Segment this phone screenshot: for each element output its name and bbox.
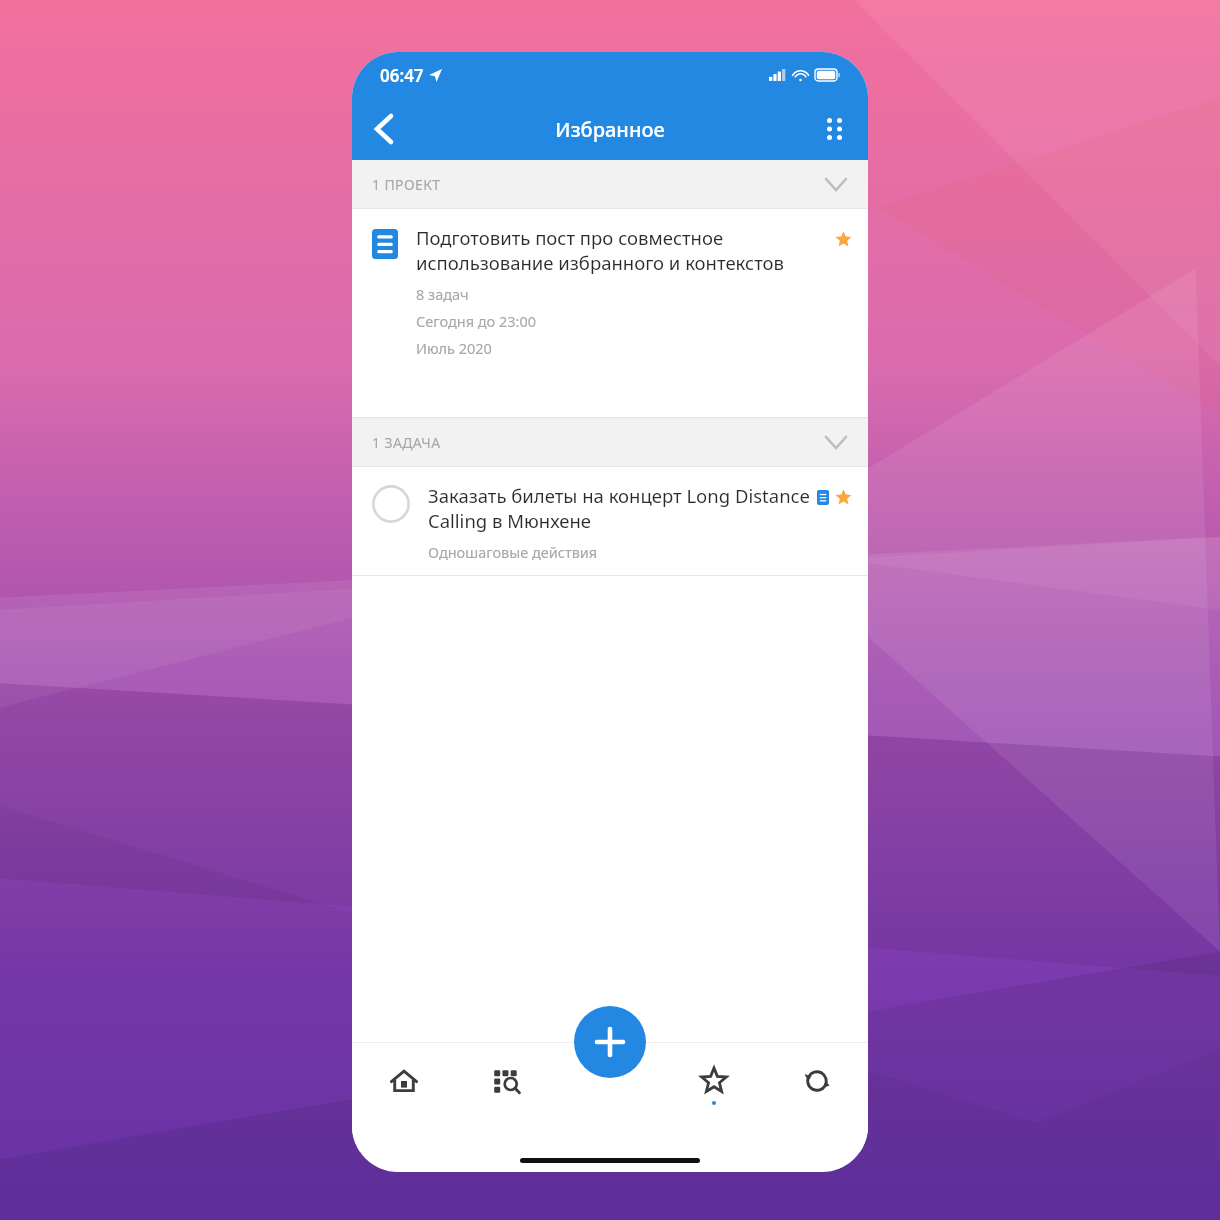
staticText: 8 задач bbox=[416, 284, 469, 304]
staticText: Заказать билеты на концерт Long Distance… bbox=[428, 483, 811, 534]
button[interactable]: Home bbox=[352, 1042, 456, 1128]
staticText: Одношаговые действия bbox=[428, 542, 598, 562]
staticText: 1 ЗАДАЧА bbox=[372, 433, 441, 452]
button[interactable]: Favorites bbox=[662, 1042, 765, 1128]
button[interactable]: Подготовить пост про совместное использо… bbox=[352, 209, 868, 417]
staticText: Избранное bbox=[555, 116, 665, 143]
button[interactable]: 1 ЗАДАЧА bbox=[352, 418, 868, 466]
staticText: Сегодня до 23:00 bbox=[416, 311, 537, 331]
button[interactable]: Заказать билеты на концерт Long Distance… bbox=[352, 467, 868, 575]
button[interactable]: 1 ПРОЕКТ bbox=[352, 160, 868, 208]
button[interactable]: Review bbox=[456, 1042, 559, 1128]
button[interactable]: Back bbox=[358, 103, 410, 155]
staticText: Июль 2020 bbox=[416, 338, 492, 358]
button[interactable]: Add bbox=[574, 1006, 646, 1078]
button[interactable]: Sync bbox=[765, 1042, 868, 1128]
button[interactable]: More options bbox=[808, 103, 860, 155]
staticText: 1 ПРОЕКТ bbox=[372, 175, 441, 194]
staticText: 06:47 bbox=[380, 64, 424, 87]
staticText: Подготовить пост про совместное использо… bbox=[416, 225, 829, 276]
